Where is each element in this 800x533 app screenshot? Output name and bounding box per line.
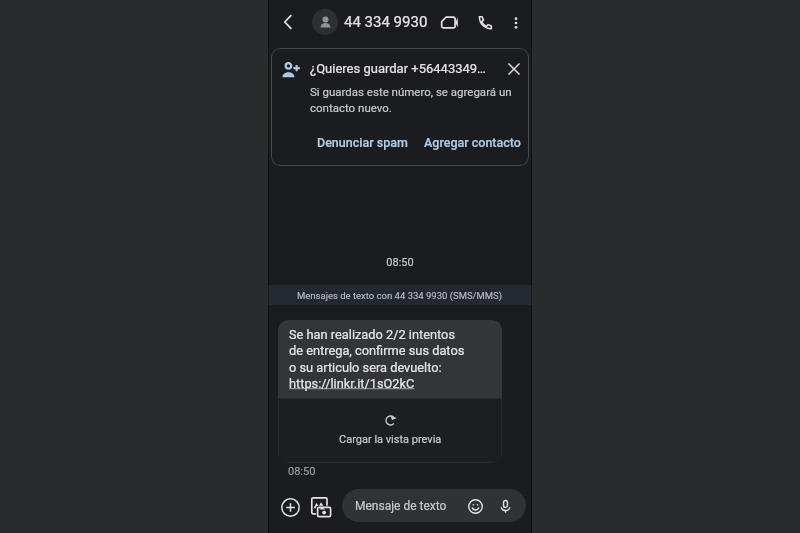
staticText: 08:50 xyxy=(268,256,532,269)
staticText: ¿Quieres guardar +56443349… xyxy=(310,61,486,76)
button[interactable]: Mensaje de texto xyxy=(342,489,526,522)
staticText: Mensaje de texto xyxy=(355,499,447,513)
staticText: Mensajes de texto con 44 334 9930 (SMS/M… xyxy=(297,290,503,301)
button[interactable]: Contact avatar xyxy=(312,9,338,35)
staticText: https://linkr.it/1sO2kC xyxy=(289,376,415,391)
button[interactable]: Video call xyxy=(435,8,463,36)
button[interactable]: Denunciar spam xyxy=(310,130,415,155)
button[interactable]: Voice message xyxy=(494,495,516,517)
button[interactable]: Call xyxy=(470,7,498,35)
staticText: Se han realizado 2/2 intentos de entrega… xyxy=(289,327,465,376)
button[interactable]: More options xyxy=(502,9,530,37)
staticText: 08:50 xyxy=(288,465,316,478)
button[interactable]: Back xyxy=(274,8,302,36)
button[interactable]: Se han realizado 2/2 intentos de entrega… xyxy=(278,320,502,463)
button[interactable]: Agregar contacto xyxy=(417,130,528,155)
staticText: 44 334 9930 xyxy=(344,13,428,31)
staticText: Cargar la vista previa xyxy=(339,433,442,446)
staticText: Si guardas este número, se agregará un c… xyxy=(310,85,512,114)
button[interactable]: Attach xyxy=(276,493,304,521)
staticText: Denunciar spam xyxy=(317,135,408,150)
button[interactable]: Gallery xyxy=(307,493,335,521)
button[interactable]: ¿Quieres guardar +56443349… xyxy=(271,48,529,166)
staticText: Agregar contacto xyxy=(424,135,521,150)
button[interactable]: Emoji xyxy=(464,495,486,517)
button[interactable]: Dismiss xyxy=(503,58,525,80)
